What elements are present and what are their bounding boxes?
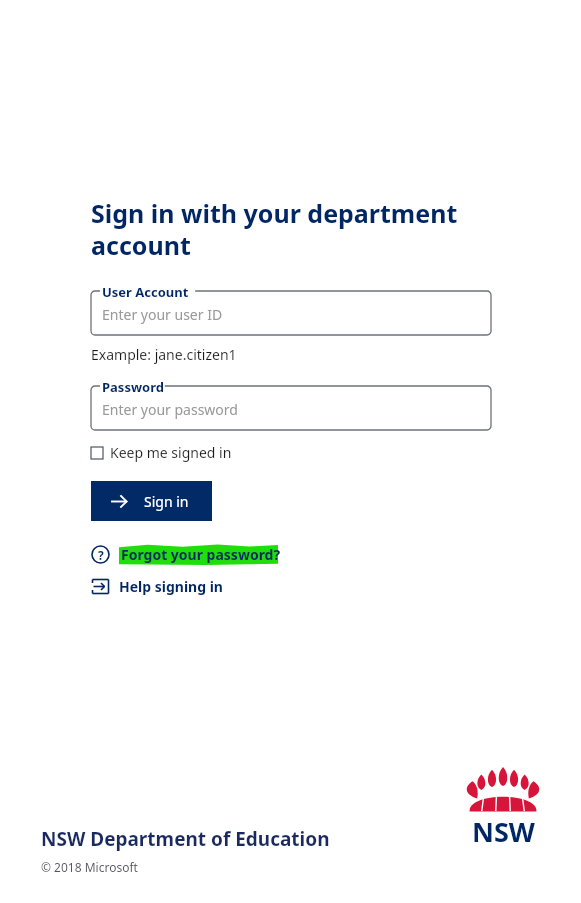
button[interactable]: Sign in [91, 481, 212, 521]
staticText: User Account [102, 283, 189, 301]
staticText: NSW [472, 813, 535, 850]
staticText: Sign in with your department account [91, 196, 491, 262]
staticText: Password [102, 378, 164, 396]
button[interactable]: User Account [91, 281, 491, 335]
staticText: Enter your user ID [102, 305, 223, 324]
staticText: Sign in [144, 492, 189, 511]
staticText: Enter your password [102, 400, 238, 419]
staticText: ? [98, 547, 104, 563]
staticText: © 2018 Microsoft [41, 859, 138, 875]
staticText: NSW Department of Education [41, 826, 330, 852]
button[interactable]: Keep me signed in [91, 441, 232, 464]
button[interactable]: ? [91, 544, 281, 565]
staticText: Forgot your password? [121, 545, 281, 564]
button[interactable]: Password [91, 376, 491, 430]
staticText: Help signing in [119, 577, 223, 596]
button[interactable]: Help signing in [91, 577, 223, 596]
staticText: Keep me signed in [110, 443, 232, 462]
staticText: Example: jane.citizen1 [91, 345, 237, 364]
